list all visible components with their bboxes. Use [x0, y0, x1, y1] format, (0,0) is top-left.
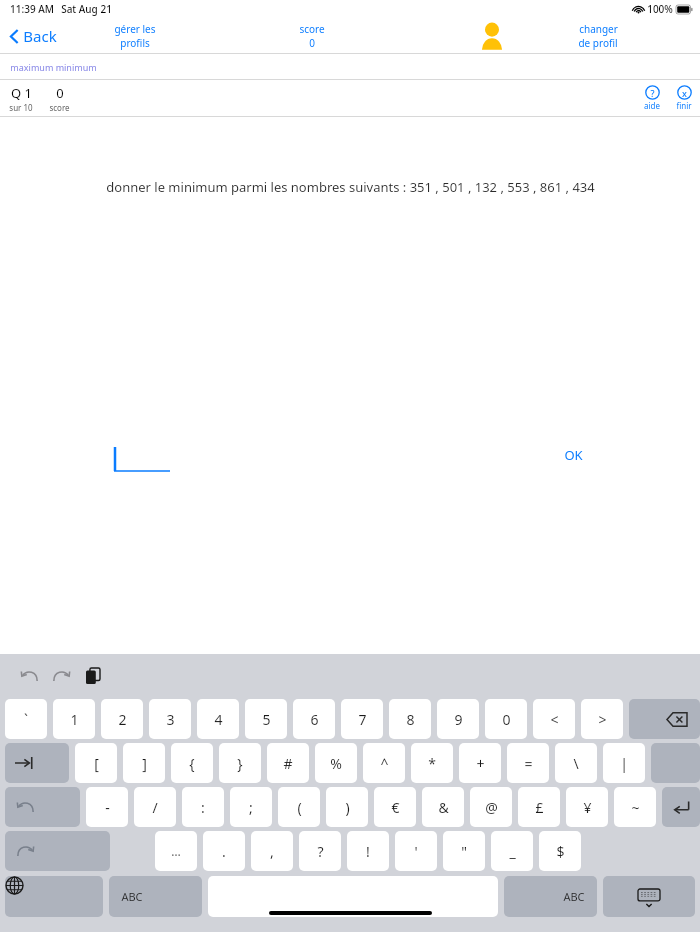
- staticText: 100%: [647, 2, 673, 16]
- button[interactable]: score: [295, 22, 329, 50]
- button[interactable]: ¥: [566, 787, 608, 827]
- button[interactable]: [: [75, 743, 117, 783]
- button[interactable]: Paste: [78, 661, 108, 691]
- button[interactable]: x: [674, 85, 694, 111]
- button[interactable]: ^: [363, 743, 405, 783]
- button[interactable]: ABC: [109, 876, 202, 917]
- button[interactable]: Keyboard language: [5, 876, 103, 917]
- button[interactable]: <: [533, 699, 575, 739]
- staticText: =: [524, 754, 533, 773]
- staticText: &: [438, 798, 449, 817]
- button[interactable]: Backspace: [629, 699, 700, 739]
- button[interactable]: .: [203, 831, 245, 871]
- button[interactable]: `: [5, 699, 47, 739]
- button[interactable]: Undo: [14, 661, 44, 691]
- button[interactable]: :: [182, 787, 224, 827]
- button[interactable]: \: [555, 743, 597, 783]
- button[interactable]: Profile: [474, 21, 510, 53]
- staticText: score: [299, 22, 325, 36]
- staticText: ?: [317, 842, 324, 861]
- button[interactable]: 2: [101, 699, 143, 739]
- staticText: ABC: [121, 889, 143, 904]
- button[interactable]: ?: [642, 85, 662, 111]
- button[interactable]: 9: [437, 699, 479, 739]
- staticText: Sat Aug 21: [61, 2, 112, 16]
- button[interactable]: Return: [662, 787, 700, 827]
- button[interactable]: Space: [208, 876, 498, 917]
- staticText: ;: [249, 798, 253, 817]
- button[interactable]: @: [470, 787, 512, 827]
- button[interactable]: {: [171, 743, 213, 783]
- button[interactable]: >: [581, 699, 623, 739]
- staticText: +: [476, 754, 485, 773]
- button[interactable]: ?: [299, 831, 341, 871]
- button[interactable]: ~: [614, 787, 656, 827]
- staticText: -: [105, 798, 110, 817]
- button[interactable]: OK: [564, 446, 583, 464]
- staticText: 9: [454, 710, 463, 729]
- button[interactable]: 6: [293, 699, 335, 739]
- button[interactable]: Tab: [5, 743, 69, 783]
- staticText: 0: [502, 710, 511, 729]
- button[interactable]: 5: [245, 699, 287, 739]
- staticText: (: [297, 798, 302, 817]
- button[interactable]: =: [507, 743, 549, 783]
- button[interactable]: Undo: [5, 787, 80, 827]
- button[interactable]: 7: [341, 699, 383, 739]
- button[interactable]: £: [518, 787, 560, 827]
- button[interactable]: !: [347, 831, 389, 871]
- staticText: 3: [166, 710, 175, 729]
- staticText: >: [598, 710, 607, 729]
- staticText: donner le minimum parmi les nombres suiv…: [106, 178, 595, 196]
- button[interactable]: Back: [6, 22, 61, 50]
- button[interactable]: *: [411, 743, 453, 783]
- button[interactable]: 3: [149, 699, 191, 739]
- button[interactable]: changer: [574, 22, 622, 50]
- button[interactable]: }: [219, 743, 261, 783]
- staticText: <: [550, 710, 559, 729]
- button[interactable]: ": [443, 831, 485, 871]
- button[interactable]: 0: [485, 699, 527, 739]
- staticText: ^: [380, 754, 389, 773]
- button[interactable]: &: [422, 787, 464, 827]
- button[interactable]: [114, 447, 170, 473]
- staticText: aide: [644, 100, 660, 111]
- button[interactable]: 4: [197, 699, 239, 739]
- button[interactable]: $: [539, 831, 581, 871]
- button[interactable]: [651, 743, 700, 783]
- button[interactable]: |: [603, 743, 645, 783]
- staticText: :: [201, 798, 205, 817]
- button[interactable]: €: [374, 787, 416, 827]
- button[interactable]: ': [395, 831, 437, 871]
- button[interactable]: /: [134, 787, 176, 827]
- button[interactable]: Hide keyboard: [603, 876, 695, 917]
- button[interactable]: #: [267, 743, 309, 783]
- button[interactable]: 1: [53, 699, 95, 739]
- button[interactable]: …: [155, 831, 197, 871]
- button[interactable]: ,: [251, 831, 293, 871]
- button[interactable]: ]: [123, 743, 165, 783]
- button[interactable]: (: [278, 787, 320, 827]
- staticText: score: [49, 102, 70, 113]
- button[interactable]: ABC: [504, 876, 597, 917]
- button[interactable]: -: [86, 787, 128, 827]
- staticText: ): [345, 798, 350, 817]
- staticText: x: [682, 87, 687, 99]
- button[interactable]: gérer les: [110, 22, 160, 50]
- button[interactable]: _: [491, 831, 533, 871]
- button[interactable]: +: [459, 743, 501, 783]
- button[interactable]: Redo: [46, 661, 76, 691]
- staticText: ABC: [563, 889, 585, 904]
- button[interactable]: Redo: [5, 831, 110, 871]
- staticText: #: [283, 754, 293, 773]
- staticText: 8: [406, 710, 415, 729]
- staticText: …: [171, 843, 181, 859]
- button[interactable]: ;: [230, 787, 272, 827]
- button[interactable]: %: [315, 743, 357, 783]
- staticText: |: [620, 754, 628, 773]
- staticText: 1: [70, 710, 79, 729]
- button[interactable]: ): [326, 787, 368, 827]
- staticText: 4: [214, 710, 223, 729]
- button[interactable]: 8: [389, 699, 431, 739]
- staticText: maximum minimum: [10, 61, 97, 73]
